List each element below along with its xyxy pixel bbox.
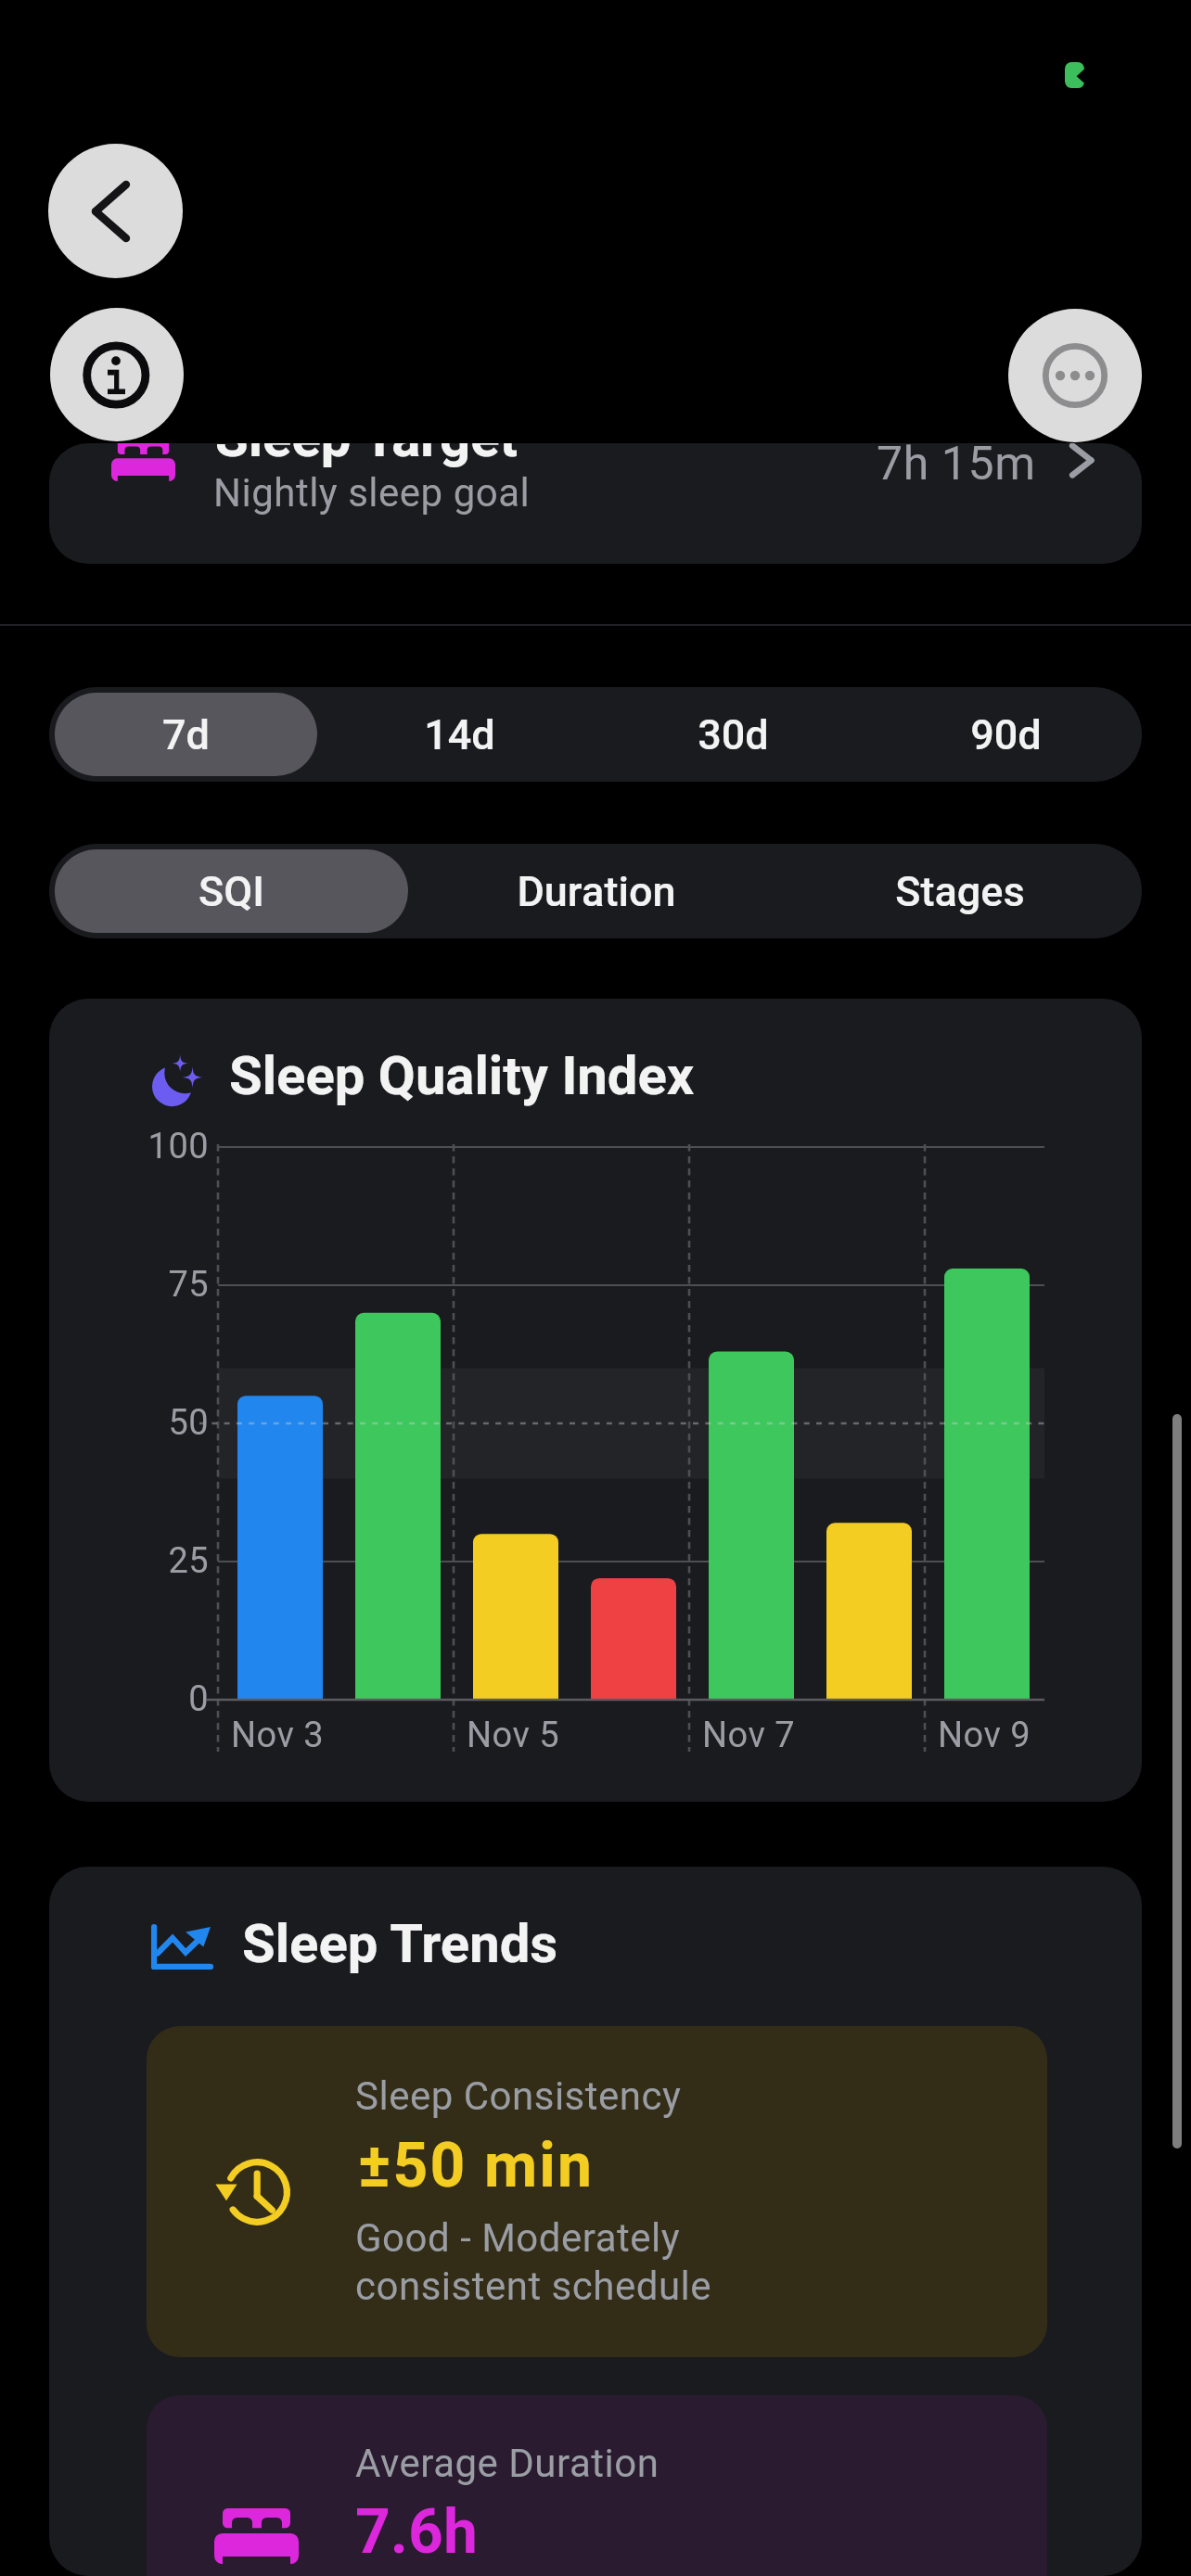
staticText: 25 [168, 1540, 209, 1582]
staticText: 90d [970, 710, 1042, 759]
staticText: Sleep Trends [242, 1912, 558, 1975]
staticText: 0 [188, 1678, 209, 1720]
staticText: 100 [147, 1126, 209, 1167]
staticText: Nov 5 [467, 1715, 559, 1756]
staticText: 75 [168, 1264, 209, 1306]
button[interactable]: Information [50, 308, 184, 441]
button[interactable]: SQI [49, 844, 414, 938]
button[interactable]: 7d [49, 687, 323, 782]
button[interactable]: More options [1008, 309, 1142, 442]
staticText: 7h 15m [877, 443, 1036, 491]
staticText: Duration [517, 867, 676, 916]
staticText: Average Duration [355, 2441, 660, 2486]
staticText: Good - Moderately consistent schedule [355, 2215, 712, 2309]
staticText: 14d [424, 710, 495, 759]
button[interactable]: Duration [414, 844, 778, 938]
staticText: Nov 3 [231, 1715, 324, 1756]
staticText: 50 [168, 1402, 209, 1444]
button[interactable]: Sleep Consistency [147, 2026, 1047, 2357]
button[interactable]: Stages [778, 844, 1142, 938]
staticText: 30d [698, 710, 769, 759]
button[interactable]: 14d [323, 687, 596, 782]
button[interactable]: 30d [596, 687, 870, 782]
staticText: 7d [162, 710, 210, 759]
staticText: SQI [198, 867, 264, 916]
staticText: Stages [895, 867, 1025, 916]
staticText: ±50 min [358, 2130, 595, 2201]
staticText: Nov 7 [702, 1715, 795, 1756]
staticText: Sleep Consistency [355, 2073, 682, 2119]
staticText: 7.6h [355, 2496, 478, 2568]
staticText: Sleep Target [215, 443, 519, 469]
staticText: Sleep Quality Index [229, 1044, 695, 1107]
staticText: Nov 9 [938, 1715, 1031, 1756]
button[interactable]: Sleep Target [49, 443, 1142, 564]
staticText: Nightly sleep goal [213, 470, 531, 516]
button[interactable]: 90d [870, 687, 1142, 782]
button[interactable]: Back [48, 144, 183, 278]
button[interactable]: Average Duration [147, 2395, 1047, 2576]
